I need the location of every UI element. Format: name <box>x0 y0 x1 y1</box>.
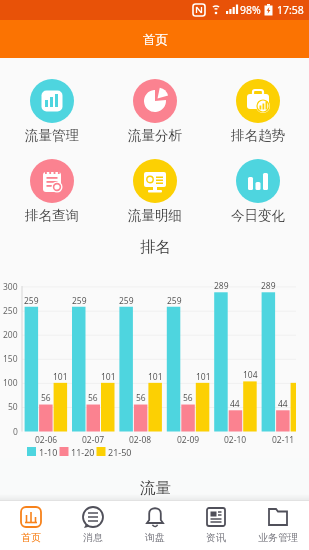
staticText: 259 <box>72 295 87 307</box>
staticText: 首页 <box>143 32 168 48</box>
button[interactable]: 消息 <box>62 501 124 550</box>
staticText: 56 <box>136 392 146 404</box>
staticText: 259 <box>24 295 39 307</box>
staticText: 今日变化 <box>231 207 285 224</box>
staticText: 250 <box>3 305 18 317</box>
staticText: 首页 <box>21 531 41 544</box>
staticText: 101 <box>53 371 68 383</box>
staticText: 200 <box>3 329 18 341</box>
staticText: 流量 <box>140 478 171 498</box>
staticText: 300 <box>3 281 18 293</box>
staticText: 289 <box>261 280 276 292</box>
staticText: 101 <box>148 371 163 383</box>
button[interactable]: 首页 <box>0 501 62 550</box>
staticText: 150 <box>3 353 18 365</box>
staticText: 56 <box>183 392 193 404</box>
button[interactable] <box>7 79 97 145</box>
staticText: 0 <box>13 426 18 438</box>
staticText: 02-09 <box>177 434 200 446</box>
staticText: 业务管理 <box>258 531 298 544</box>
staticText: 44 <box>230 398 240 410</box>
staticText: 流量明细 <box>128 207 182 224</box>
button[interactable] <box>7 159 97 225</box>
staticText: 02-06 <box>35 434 58 446</box>
staticText: 询盘 <box>145 531 165 544</box>
staticText: 02-10 <box>224 434 247 446</box>
staticText: 100 <box>3 377 18 389</box>
staticText: 289 <box>214 280 229 292</box>
button[interactable] <box>213 159 303 225</box>
button[interactable] <box>110 79 200 145</box>
staticText: 1-10 <box>39 446 58 458</box>
staticText: 21-50 <box>108 446 132 458</box>
staticText: 消息 <box>83 531 103 544</box>
staticText: 56 <box>88 392 98 404</box>
staticText: 排名查询 <box>25 207 79 224</box>
staticText: 101 <box>101 371 116 383</box>
staticText: 排名趋势 <box>231 127 285 144</box>
staticText: 02-11 <box>272 434 295 446</box>
button[interactable] <box>110 159 200 225</box>
staticText: 排名 <box>140 237 171 257</box>
staticText: 259 <box>167 295 182 307</box>
staticText: 02-08 <box>129 434 152 446</box>
staticText: 259 <box>119 295 134 307</box>
staticText: 11-20 <box>71 446 95 458</box>
staticText: 44 <box>278 398 288 410</box>
staticText: 50 <box>8 401 18 413</box>
staticText: 104 <box>243 369 258 381</box>
button[interactable]: 业务管理 <box>247 501 309 550</box>
staticText: 98% <box>240 3 261 17</box>
staticText: 56 <box>41 392 51 404</box>
staticText: 101 <box>196 371 211 383</box>
staticText: 流量管理 <box>25 127 79 144</box>
button[interactable]: 资讯 <box>185 501 247 550</box>
staticText: 02-07 <box>82 434 105 446</box>
button[interactable]: 询盘 <box>124 501 186 550</box>
staticText: 17:58 <box>277 3 304 17</box>
button[interactable] <box>213 79 303 145</box>
staticText: 资讯 <box>206 531 226 544</box>
staticText: 流量分析 <box>128 127 182 144</box>
